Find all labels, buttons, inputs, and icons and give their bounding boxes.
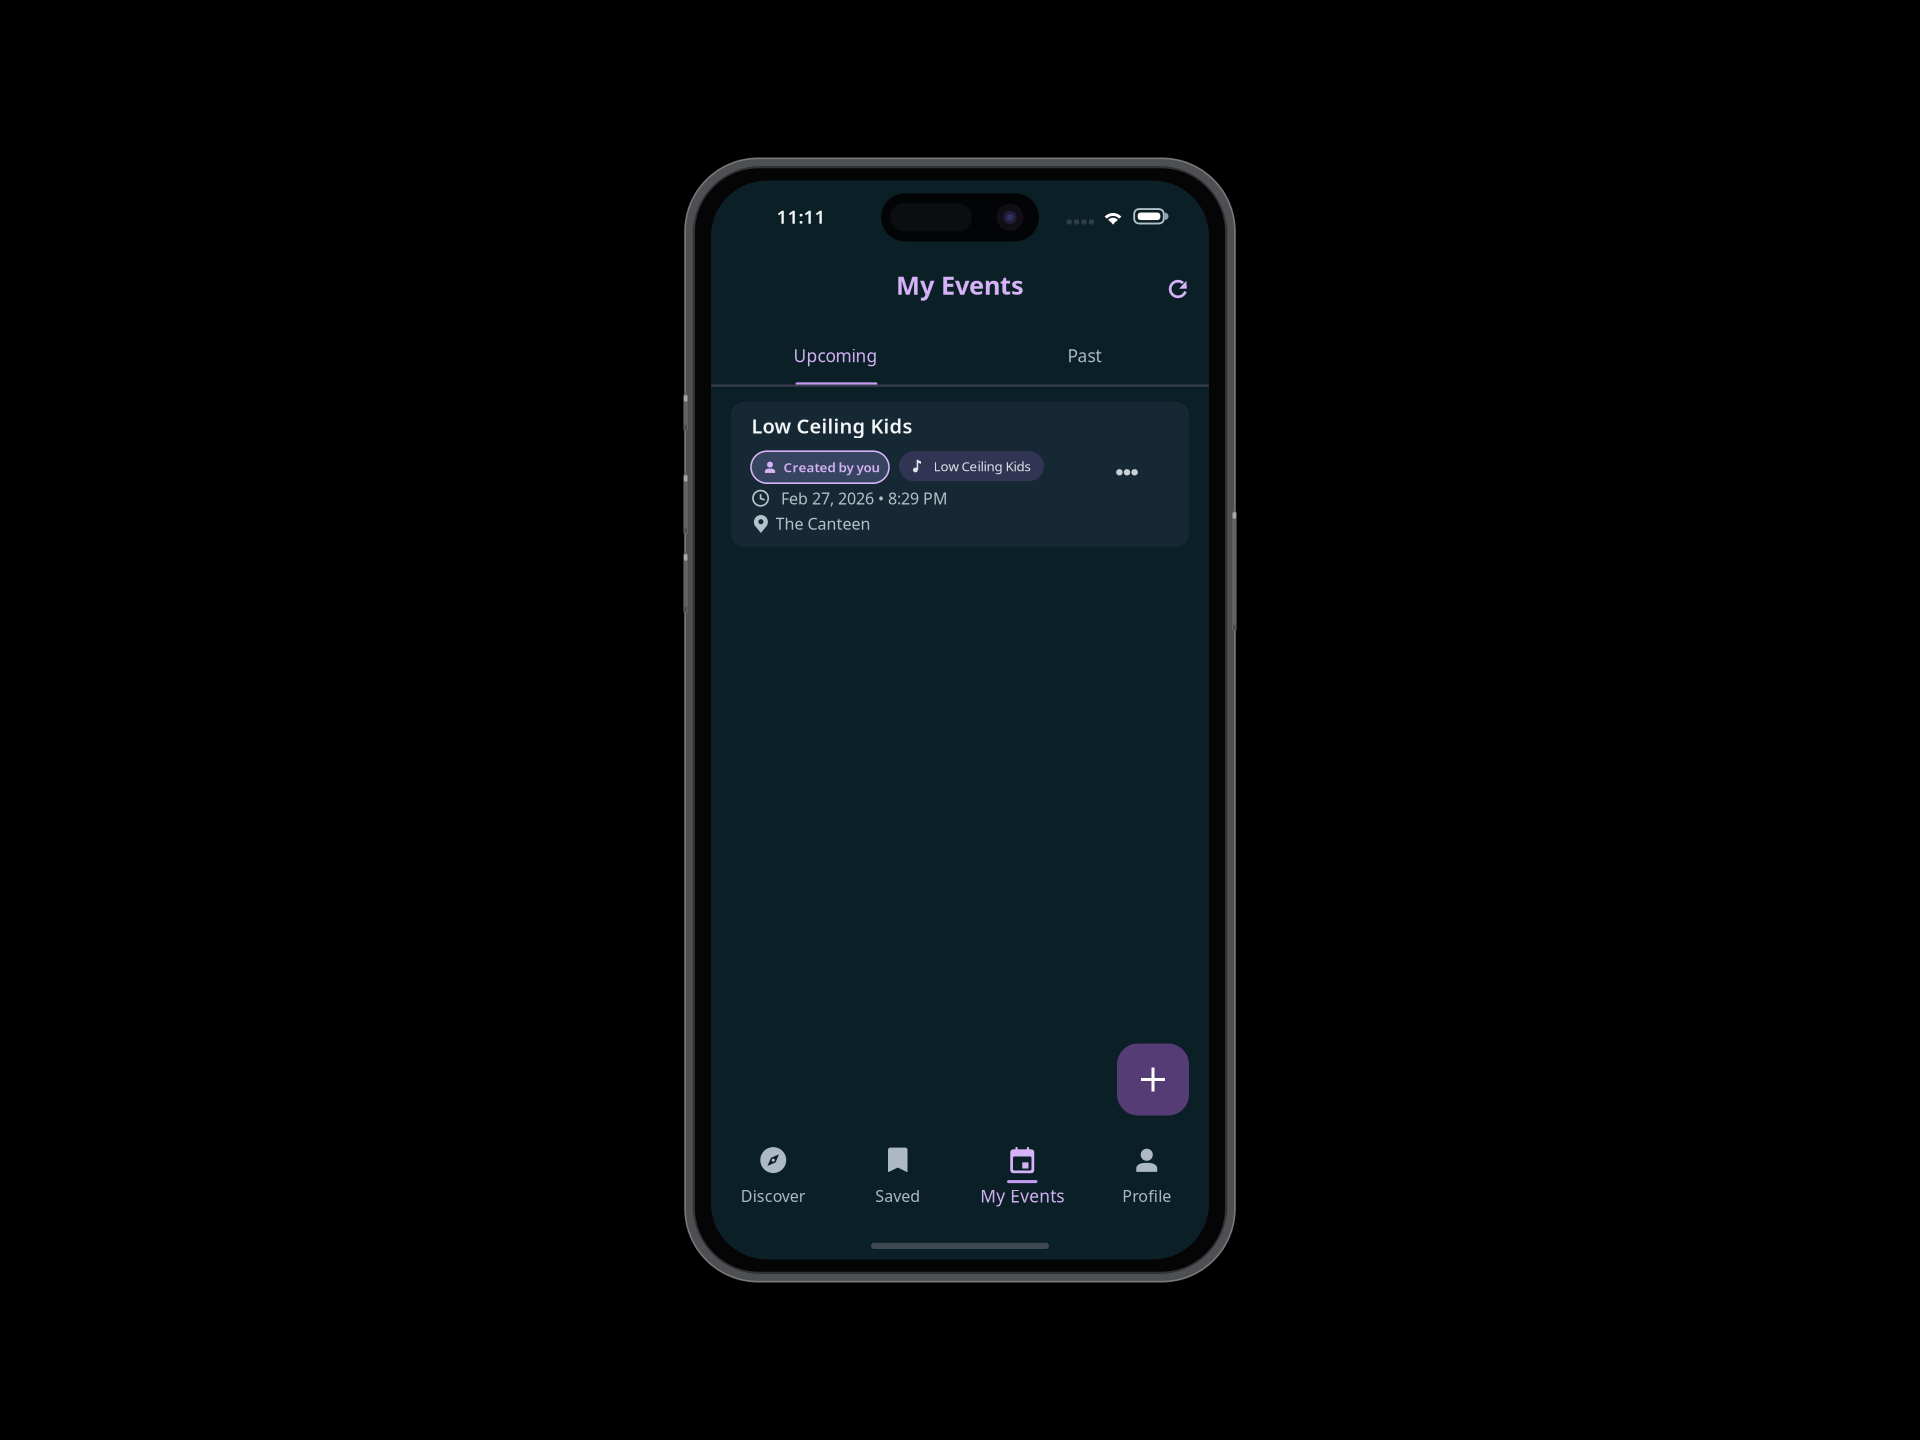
button[interactable]: Profile (1084, 1145, 1209, 1215)
staticText: Created by you (783, 458, 880, 476)
staticText: Saved (875, 1185, 920, 1206)
staticText: My Events (980, 1184, 1064, 1207)
button[interactable]: My Events (960, 1145, 1084, 1215)
staticText: 11:11 (776, 204, 825, 229)
staticText: Upcoming (793, 344, 877, 367)
staticText: Profile (1122, 1185, 1171, 1206)
staticText: Past (1067, 344, 1101, 367)
staticText: Low Ceiling Kids (751, 412, 912, 439)
button[interactable]: Low Ceiling Kids (731, 402, 1189, 547)
button[interactable]: More options (1104, 453, 1150, 491)
staticText: Discover (741, 1185, 806, 1206)
button[interactable]: Upcoming (711, 329, 960, 381)
button[interactable]: Past (960, 329, 1209, 381)
button[interactable]: Refresh (1156, 267, 1200, 311)
button[interactable]: Discover (711, 1145, 835, 1215)
staticText: The Canteen (775, 513, 870, 534)
button[interactable]: Saved (835, 1145, 960, 1215)
staticText: Feb 27, 2026 • 8:29 PM (781, 488, 948, 509)
button[interactable]: Create event (1117, 1043, 1189, 1115)
staticText: My Events (896, 268, 1024, 302)
staticText: Low Ceiling Kids (933, 457, 1030, 475)
